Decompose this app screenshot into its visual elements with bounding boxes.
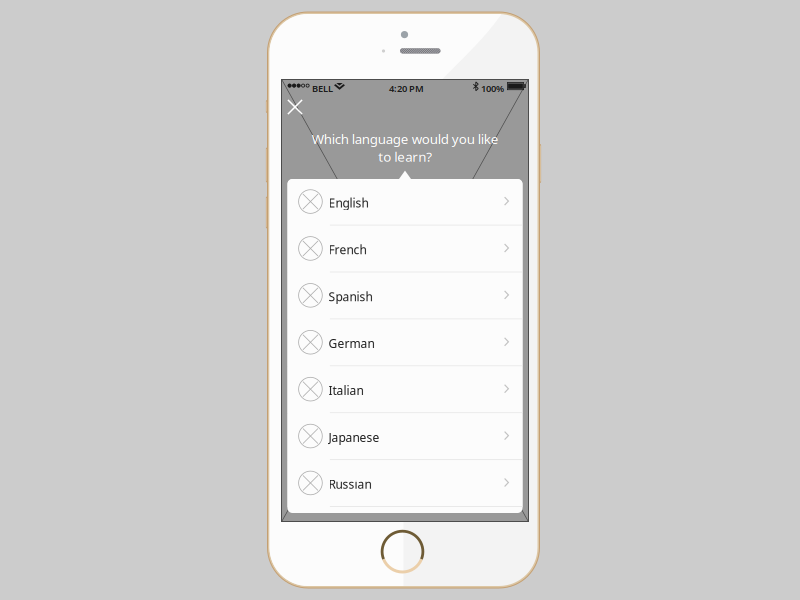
button[interactable]: German: [287, 320, 522, 367]
button[interactable]: Russian: [287, 460, 522, 507]
button[interactable]: English: [287, 179, 522, 226]
button[interactable]: Japanese: [287, 413, 522, 460]
staticText: Italian: [328, 382, 363, 398]
button[interactable]: Spanish: [287, 273, 522, 320]
button[interactable]: Close: [282, 92, 312, 122]
staticText: 4:20 PM: [389, 82, 424, 95]
staticText: French: [328, 242, 366, 258]
staticText: Spanish: [328, 289, 372, 304]
staticText: English: [328, 195, 368, 211]
staticText: Japanese: [328, 429, 379, 445]
staticText: Which language would you like to learn?: [311, 130, 498, 165]
staticText: BELL: [312, 82, 333, 95]
staticText: Russian: [328, 476, 371, 492]
button[interactable]: French: [287, 226, 522, 273]
staticText: German: [328, 335, 374, 351]
button[interactable]: Italian: [287, 367, 522, 413]
staticText: 100%: [481, 82, 504, 95]
